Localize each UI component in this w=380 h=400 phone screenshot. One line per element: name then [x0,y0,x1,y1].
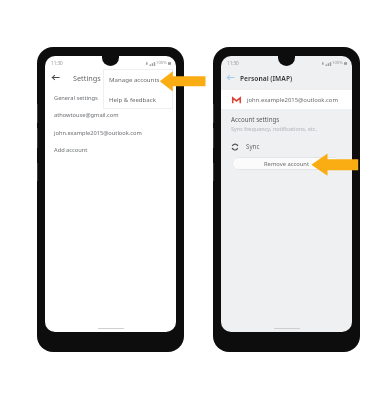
button[interactable]: athowtouse@gmail.com [45,106,176,123]
button[interactable]: Sync [221,138,352,154]
staticText: Manage accounts [109,75,160,83]
staticText: Help & feedback [109,95,156,103]
staticText: General settings [54,94,98,102]
button[interactable]: john.example2015@outlook.com [221,90,352,109]
button[interactable]: Back [224,71,237,84]
staticText: 100% [156,60,167,66]
button[interactable]: Help & feedback [103,89,173,109]
button[interactable]: Remove account [232,157,341,170]
staticText: Settings [73,73,101,83]
staticText: john.example2015@outlook.com [54,129,142,137]
staticText: athowtouse@gmail.com [54,111,119,119]
staticText: Account settings [231,115,280,123]
staticText: 100% [332,60,343,66]
button[interactable]: Back [49,71,62,84]
staticText: Sync frequency, notifications, etc. [231,125,317,132]
button[interactable]: General settings [45,89,176,106]
staticText: Personal (IMAP) [240,74,293,83]
button[interactable]: Manage accounts [103,69,173,89]
staticText: Sync [246,142,260,150]
button[interactable]: Add account [45,141,176,158]
staticText: 11:30 [51,60,63,66]
staticText: Add account [54,146,88,154]
staticText: Remove account [264,160,309,168]
button[interactable]: john.example2015@outlook.com [45,124,176,141]
staticText: 11:30 [227,60,239,66]
staticText: john.example2015@outlook.com [247,96,338,104]
